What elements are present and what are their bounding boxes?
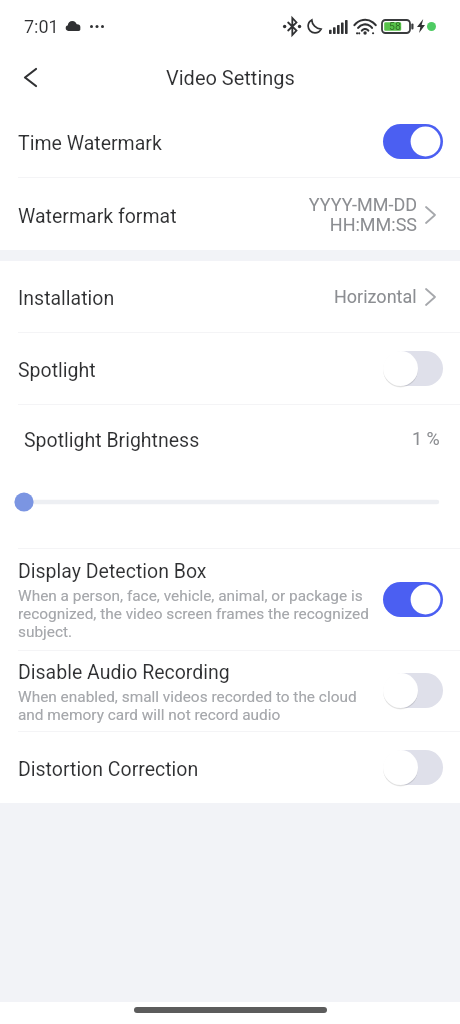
staticText: 7:01 xyxy=(24,16,59,37)
button[interactable]: Installation xyxy=(0,261,460,332)
button[interactable]: Turn on xyxy=(383,673,443,708)
button[interactable]: Turn off xyxy=(383,124,443,159)
button[interactable]: Disable Audio Recording xyxy=(0,650,460,731)
button[interactable]: Distortion Correction xyxy=(0,731,460,803)
staticText: Distortion Correction xyxy=(18,758,199,781)
button[interactable]: Turn on xyxy=(383,750,443,785)
staticText: Spotlight Brightness xyxy=(24,429,200,452)
button[interactable]: Back xyxy=(8,55,52,99)
staticText: 58 xyxy=(389,20,401,32)
staticText: Video Settings xyxy=(166,66,295,89)
staticText: Installation xyxy=(18,287,115,310)
staticText: When enabled, small videos recorded to t… xyxy=(18,688,374,724)
staticText: Disable Audio Recording xyxy=(18,661,230,684)
button[interactable]: Spotlight xyxy=(0,333,460,404)
staticText: When a person, face, vehicle, animal, or… xyxy=(18,587,374,641)
staticText: 1 % xyxy=(412,428,440,449)
staticText: Time Watermark xyxy=(18,132,162,155)
staticText: Spotlight xyxy=(18,359,96,382)
staticText: Watermark format xyxy=(18,205,177,228)
button[interactable]: Watermark format xyxy=(0,178,460,250)
button[interactable]: Display Detection Box xyxy=(0,549,460,650)
button[interactable]: Time Watermark xyxy=(0,106,460,177)
staticText: Display Detection Box xyxy=(18,560,207,583)
button[interactable]: Turn off xyxy=(383,582,443,617)
staticText: YYYY-MM-DD HH:MM:SS xyxy=(308,194,417,235)
button[interactable]: Turn on xyxy=(383,351,443,386)
staticText: Horizontal xyxy=(334,286,417,307)
